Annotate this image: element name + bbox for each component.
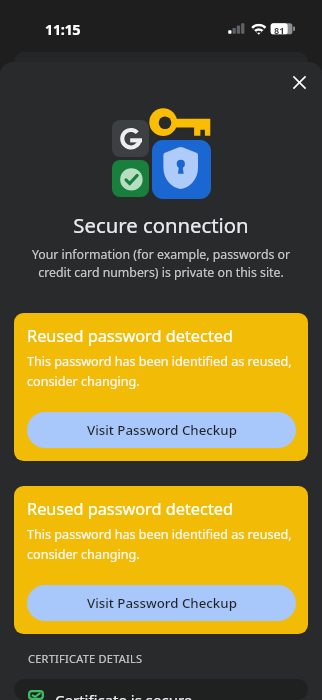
staticText: Visit Password Checkup bbox=[87, 421, 237, 439]
button[interactable]: Certificate is secure bbox=[14, 679, 308, 700]
staticText: Your information (for example, passwords… bbox=[18, 246, 304, 280]
staticText: Secure connection bbox=[0, 211, 322, 239]
staticText: This password has been identified as reu… bbox=[27, 526, 296, 563]
staticText: 11:15 bbox=[45, 19, 81, 39]
staticText: 81 bbox=[274, 24, 285, 36]
staticText: Visit Password Checkup bbox=[87, 594, 237, 612]
staticText: Certificate is secure bbox=[55, 690, 193, 700]
staticText: CERTIFICATE DETAILS bbox=[28, 651, 143, 666]
button[interactable]: Reused password detected bbox=[14, 486, 308, 634]
button[interactable]: Visit Password Checkup bbox=[27, 585, 296, 621]
staticText: Reused password detected bbox=[27, 498, 233, 520]
button[interactable]: Reused password detected bbox=[14, 313, 308, 461]
button[interactable]: Close bbox=[283, 66, 315, 98]
staticText: Reused password detected bbox=[27, 325, 233, 347]
button[interactable]: Visit Password Checkup bbox=[27, 412, 296, 448]
staticText: This password has been identified as reu… bbox=[27, 353, 296, 390]
